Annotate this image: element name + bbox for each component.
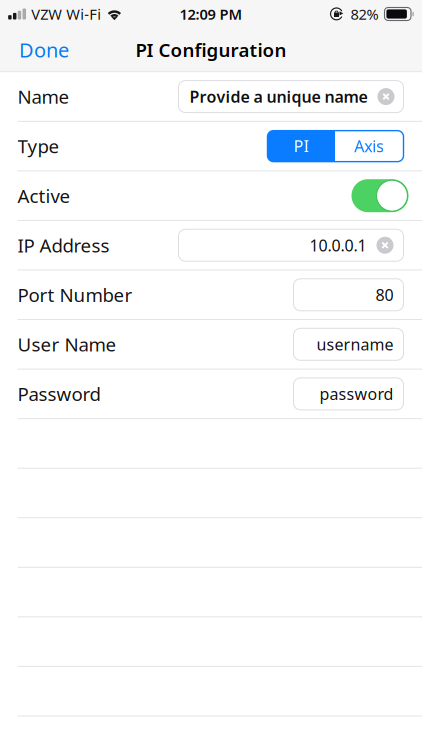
staticText: Port Number [18,282,133,307]
button[interactable]: Done [0,25,83,74]
staticText: User Name [18,332,117,357]
staticText: password [319,383,393,404]
staticText: 82% [350,4,378,24]
button[interactable]: 80 [293,279,403,311]
staticText: Done [19,36,69,63]
staticText: username [316,334,393,355]
staticText: Active [18,183,71,208]
button[interactable]: password [293,378,403,410]
button[interactable]: Axis [335,131,403,162]
staticText: 80 [375,284,393,305]
staticText: PI [294,135,309,157]
staticText: Provide a unique name [189,86,367,107]
staticText: 10.0.0.1 [309,235,366,256]
staticText: IP Address [18,233,110,258]
button[interactable]: username [293,328,403,360]
staticText: PI Configuration [135,37,286,62]
staticText: VZW Wi-Fi [31,4,101,24]
staticText: Name [18,84,70,109]
staticText: Password [18,381,101,406]
button[interactable]: 10.0.0.1 [178,229,403,261]
staticText: Type [18,134,60,158]
button[interactable]: Active [351,179,403,212]
staticText: 12:09 PM [179,4,242,24]
button[interactable]: Provide a unique name [178,81,403,113]
staticText: Axis [354,135,384,157]
button[interactable]: PI [267,131,335,162]
